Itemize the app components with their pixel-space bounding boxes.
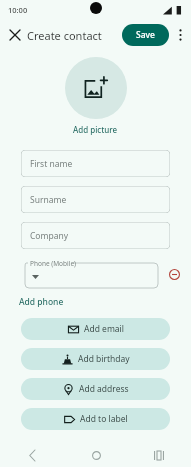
button[interactable]: Home	[86, 445, 106, 465]
staticText: 10:00	[8, 5, 28, 15]
button[interactable]: Close	[4, 24, 26, 46]
staticText: Surname	[30, 194, 67, 206]
button[interactable]: Company	[21, 222, 170, 249]
button[interactable]: Add address	[21, 378, 170, 400]
staticText: First name	[30, 158, 73, 170]
button[interactable]: Add to label	[21, 408, 170, 430]
button[interactable]: Phone (Mobile)	[21, 259, 159, 289]
staticText: Create contact	[27, 28, 102, 43]
staticText: Phone (Mobile)	[30, 259, 77, 268]
button[interactable]: More options	[171, 26, 189, 44]
staticText: Add birthday	[78, 353, 130, 365]
button[interactable]: Save	[122, 24, 169, 46]
button[interactable]: Remove phone	[163, 263, 185, 285]
button[interactable]: First name	[21, 150, 170, 177]
staticText: Company	[30, 230, 69, 242]
staticText: Save	[136, 29, 155, 41]
button[interactable]: Add email	[21, 318, 170, 340]
button[interactable]: Add picture	[65, 57, 127, 119]
staticText: Add to label	[80, 413, 128, 425]
staticText: Add phone	[19, 296, 64, 308]
button[interactable]: Recents	[149, 445, 169, 465]
button[interactable]: Add phone	[18, 294, 65, 310]
button[interactable]: Add birthday	[21, 348, 170, 370]
staticText: Add email	[84, 323, 124, 335]
button[interactable]: Back	[22, 445, 42, 465]
button[interactable]: Surname	[21, 186, 170, 213]
staticText: Add address	[79, 383, 129, 395]
staticText: Add picture	[73, 124, 118, 135]
